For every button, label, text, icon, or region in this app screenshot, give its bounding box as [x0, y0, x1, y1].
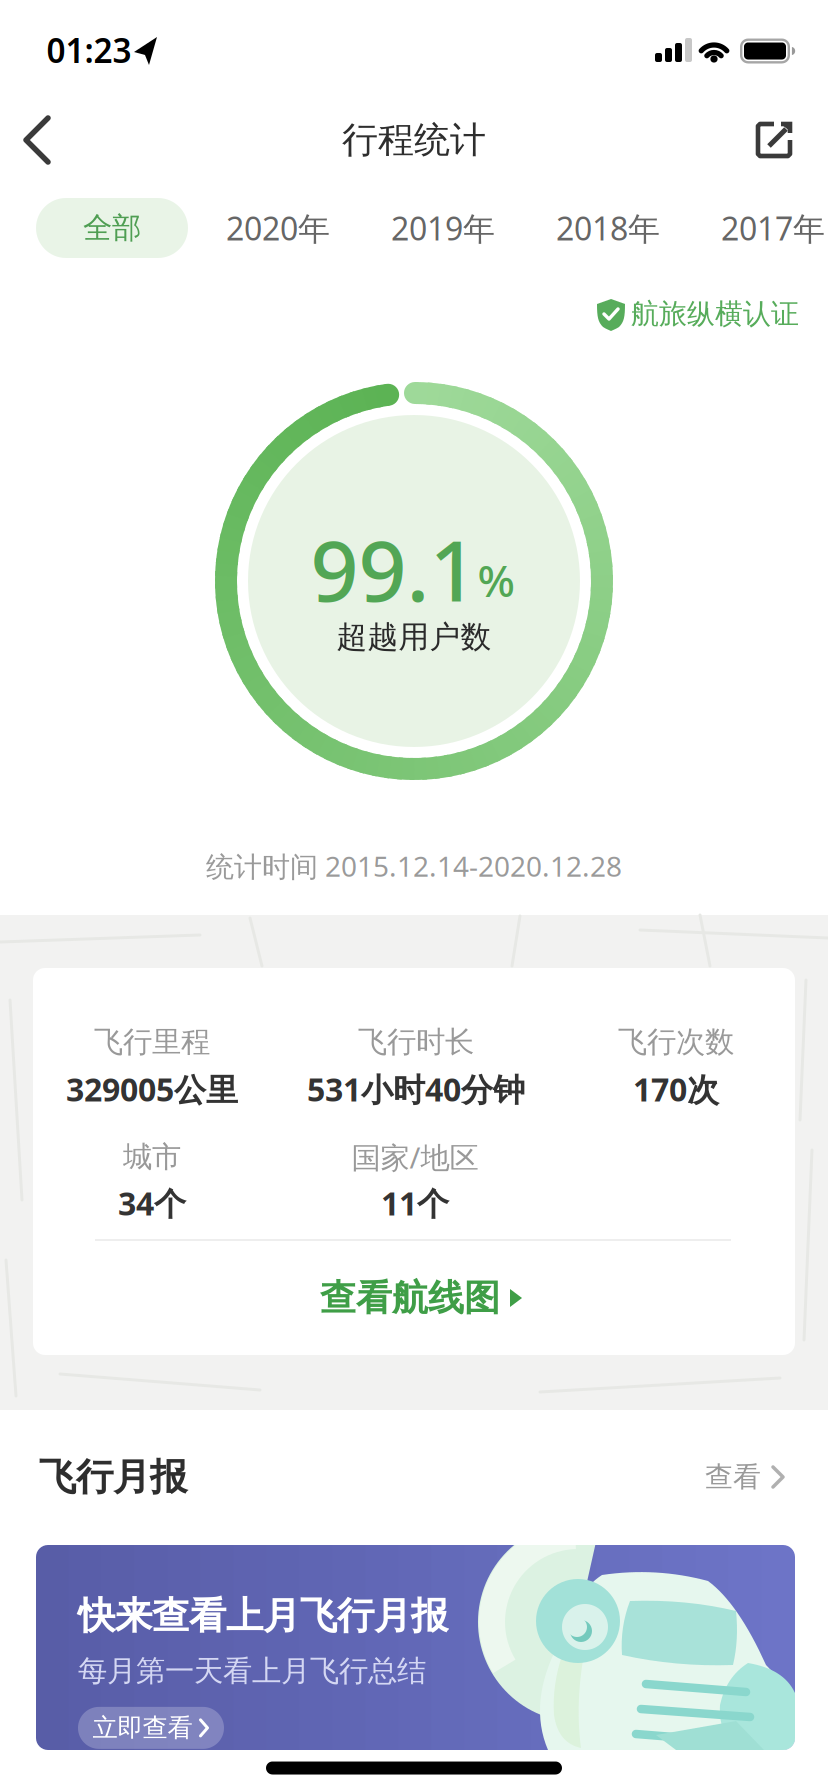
- staticText: 2017年: [721, 207, 825, 249]
- button[interactable]: 查看: [685, 1447, 805, 1507]
- button[interactable]: Share: [748, 118, 800, 162]
- staticText: %: [477, 551, 514, 609]
- staticText: 立即查看: [92, 1712, 192, 1743]
- staticText: 航旅纵横认证: [631, 297, 799, 331]
- staticText: 城市: [123, 1139, 181, 1175]
- button[interactable]: Back: [15, 110, 75, 170]
- staticText: 170次: [633, 1068, 719, 1110]
- staticText: 快来查看上月飞行月报: [78, 1593, 448, 1639]
- button[interactable]: 2018年: [538, 198, 678, 258]
- button[interactable]: 2017年: [703, 198, 828, 258]
- button[interactable]: 2020年: [208, 198, 348, 258]
- button[interactable]: 查看航线图: [272, 1258, 572, 1338]
- staticText: 99.1: [310, 513, 477, 625]
- staticText: 329005公里: [66, 1068, 238, 1110]
- staticText: 行程统计: [342, 118, 486, 162]
- staticText: 全部: [83, 210, 141, 246]
- staticText: 01:23: [46, 28, 131, 72]
- staticText: 飞行月报: [39, 1454, 187, 1500]
- staticText: 34个: [118, 1182, 186, 1224]
- staticText: 查看航线图: [320, 1276, 500, 1320]
- staticText: 2018年: [556, 207, 660, 249]
- staticText: 飞行次数: [618, 1024, 734, 1060]
- button[interactable]: 2019年: [373, 198, 513, 258]
- staticText: 2019年: [391, 207, 495, 249]
- staticText: 飞行时长: [358, 1024, 474, 1060]
- staticText: 超越用户数: [336, 618, 491, 656]
- staticText: 统计时间 2015.12.14-2020.12.28: [206, 847, 622, 885]
- staticText: 11个: [381, 1182, 449, 1224]
- staticText: 国家/地区: [351, 1137, 478, 1176]
- staticText: 飞行里程: [94, 1024, 210, 1060]
- staticText: 531小时40分钟: [307, 1068, 525, 1110]
- button[interactable]: 快来查看上月飞行月报: [36, 1545, 795, 1750]
- staticText: 2020年: [226, 207, 330, 249]
- staticText: 查看: [705, 1460, 761, 1494]
- staticText: 每月第一天看上月飞行总结: [78, 1653, 426, 1689]
- button[interactable]: 全部: [36, 198, 188, 258]
